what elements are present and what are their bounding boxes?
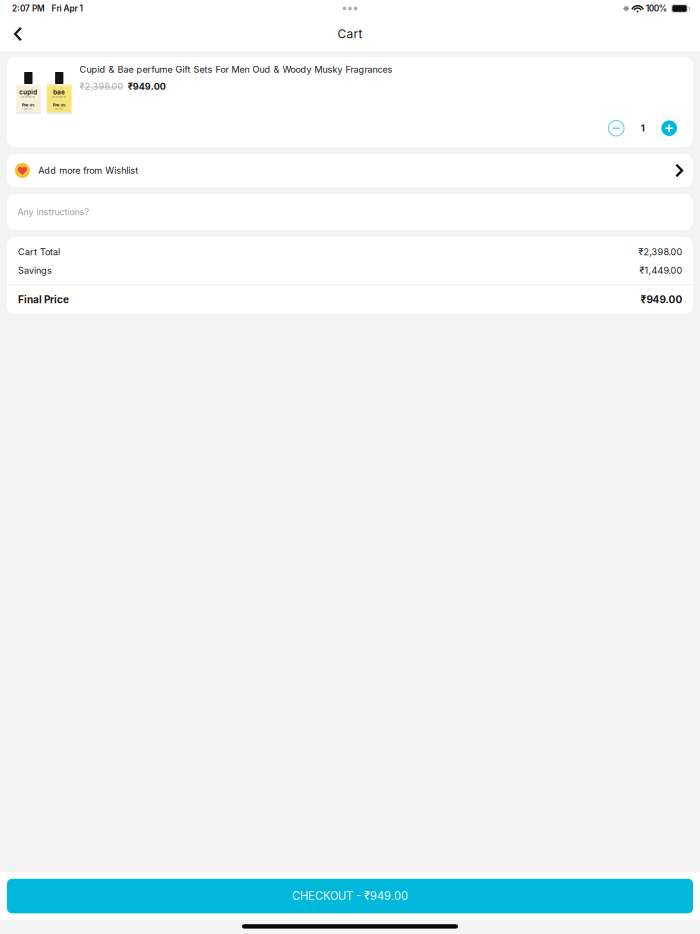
staticText: Cupid & Bae perfume Gift Sets For Men Ou… xyxy=(80,64,393,75)
button[interactable]: Decrease quantity xyxy=(608,120,624,136)
staticText: Any instructions? xyxy=(17,206,89,217)
staticText: 100% xyxy=(646,3,667,13)
button[interactable]: Increase quantity xyxy=(661,120,677,136)
staticText: Cart xyxy=(337,27,362,41)
staticText: eau de parfum xyxy=(21,96,35,98)
staticText: गिफ्ट सेट xyxy=(22,102,35,108)
staticText: 1 xyxy=(641,123,645,134)
staticText: Add more from Wishlist xyxy=(38,165,138,176)
staticText: ₹949.00 xyxy=(640,293,682,306)
staticText: bae xyxy=(53,88,65,96)
staticText: eau de parfum xyxy=(52,96,66,98)
button[interactable]: cupid xyxy=(7,57,693,114)
staticText: ₹949.00 xyxy=(128,81,166,92)
staticText: Fri Apr 1 xyxy=(52,3,83,13)
staticText: ₹2,398.00 xyxy=(638,246,682,257)
staticText: Final Price xyxy=(18,293,69,306)
button[interactable]: Add more from Wishlist xyxy=(7,154,693,187)
staticText: perfume xyxy=(24,107,32,110)
staticText: गिफ्ट सेट xyxy=(53,102,66,108)
staticText: cupid xyxy=(19,88,37,96)
staticText: Savings xyxy=(18,265,52,276)
staticText: perfume xyxy=(55,107,63,110)
button[interactable]: CHECKOUT - ₹949.00 xyxy=(7,879,693,913)
staticText: Cart Total xyxy=(18,246,60,257)
staticText: ₹2,398.00 xyxy=(80,81,124,92)
button[interactable]: Back xyxy=(3,17,33,51)
staticText: 2:07 PM xyxy=(12,3,45,13)
button[interactable]: Any instructions? xyxy=(7,194,693,230)
staticText: CHECKOUT - ₹949.00 xyxy=(292,889,408,903)
staticText: ₹1,449.00 xyxy=(639,265,682,276)
